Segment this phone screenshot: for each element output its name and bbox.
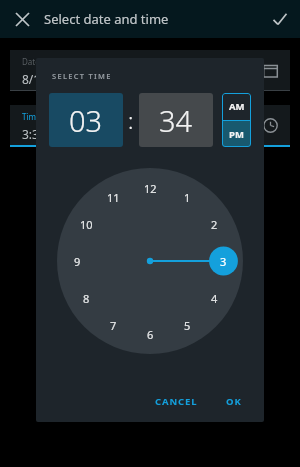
button[interactable]: Close xyxy=(0,0,44,38)
button[interactable]: Pick date xyxy=(250,50,290,90)
staticText: 2 xyxy=(211,217,218,232)
staticText: PM xyxy=(229,128,244,141)
staticText: 34 xyxy=(159,101,193,140)
staticText: 12 xyxy=(144,181,157,196)
staticText: 9 xyxy=(74,254,81,269)
staticText: : xyxy=(128,105,134,135)
button[interactable]: Confirm xyxy=(260,0,300,38)
staticText: Time xyxy=(22,111,41,122)
staticText: 5 xyxy=(184,318,191,333)
staticText: 6 xyxy=(147,327,154,342)
button[interactable]: OK xyxy=(218,389,250,414)
staticText: SELECT TIME xyxy=(52,71,112,81)
button[interactable]: PM xyxy=(222,121,251,147)
staticText: OK xyxy=(226,395,242,408)
button[interactable]: 03 xyxy=(49,93,123,147)
staticText: Date xyxy=(22,56,40,67)
button[interactable]: CANCEL xyxy=(147,389,206,414)
staticText: Select date and time xyxy=(44,10,169,28)
staticText: 1 xyxy=(184,190,191,205)
button[interactable]: AM xyxy=(222,93,251,120)
staticText: CANCEL xyxy=(155,395,198,408)
staticText: 10 xyxy=(80,217,93,232)
button[interactable]: Pick time xyxy=(250,105,290,145)
staticText: 4 xyxy=(211,291,218,306)
staticText: 11 xyxy=(107,190,120,205)
staticText: 8/17/2023 xyxy=(22,71,79,87)
button[interactable]: 34 xyxy=(139,93,213,147)
staticText: 8 xyxy=(83,291,90,306)
staticText: 7 xyxy=(110,318,117,333)
staticText: 03 xyxy=(69,101,103,140)
staticText: AM xyxy=(229,100,245,113)
staticText: 3 xyxy=(220,254,227,269)
staticText: 3:34 PM xyxy=(22,126,68,142)
